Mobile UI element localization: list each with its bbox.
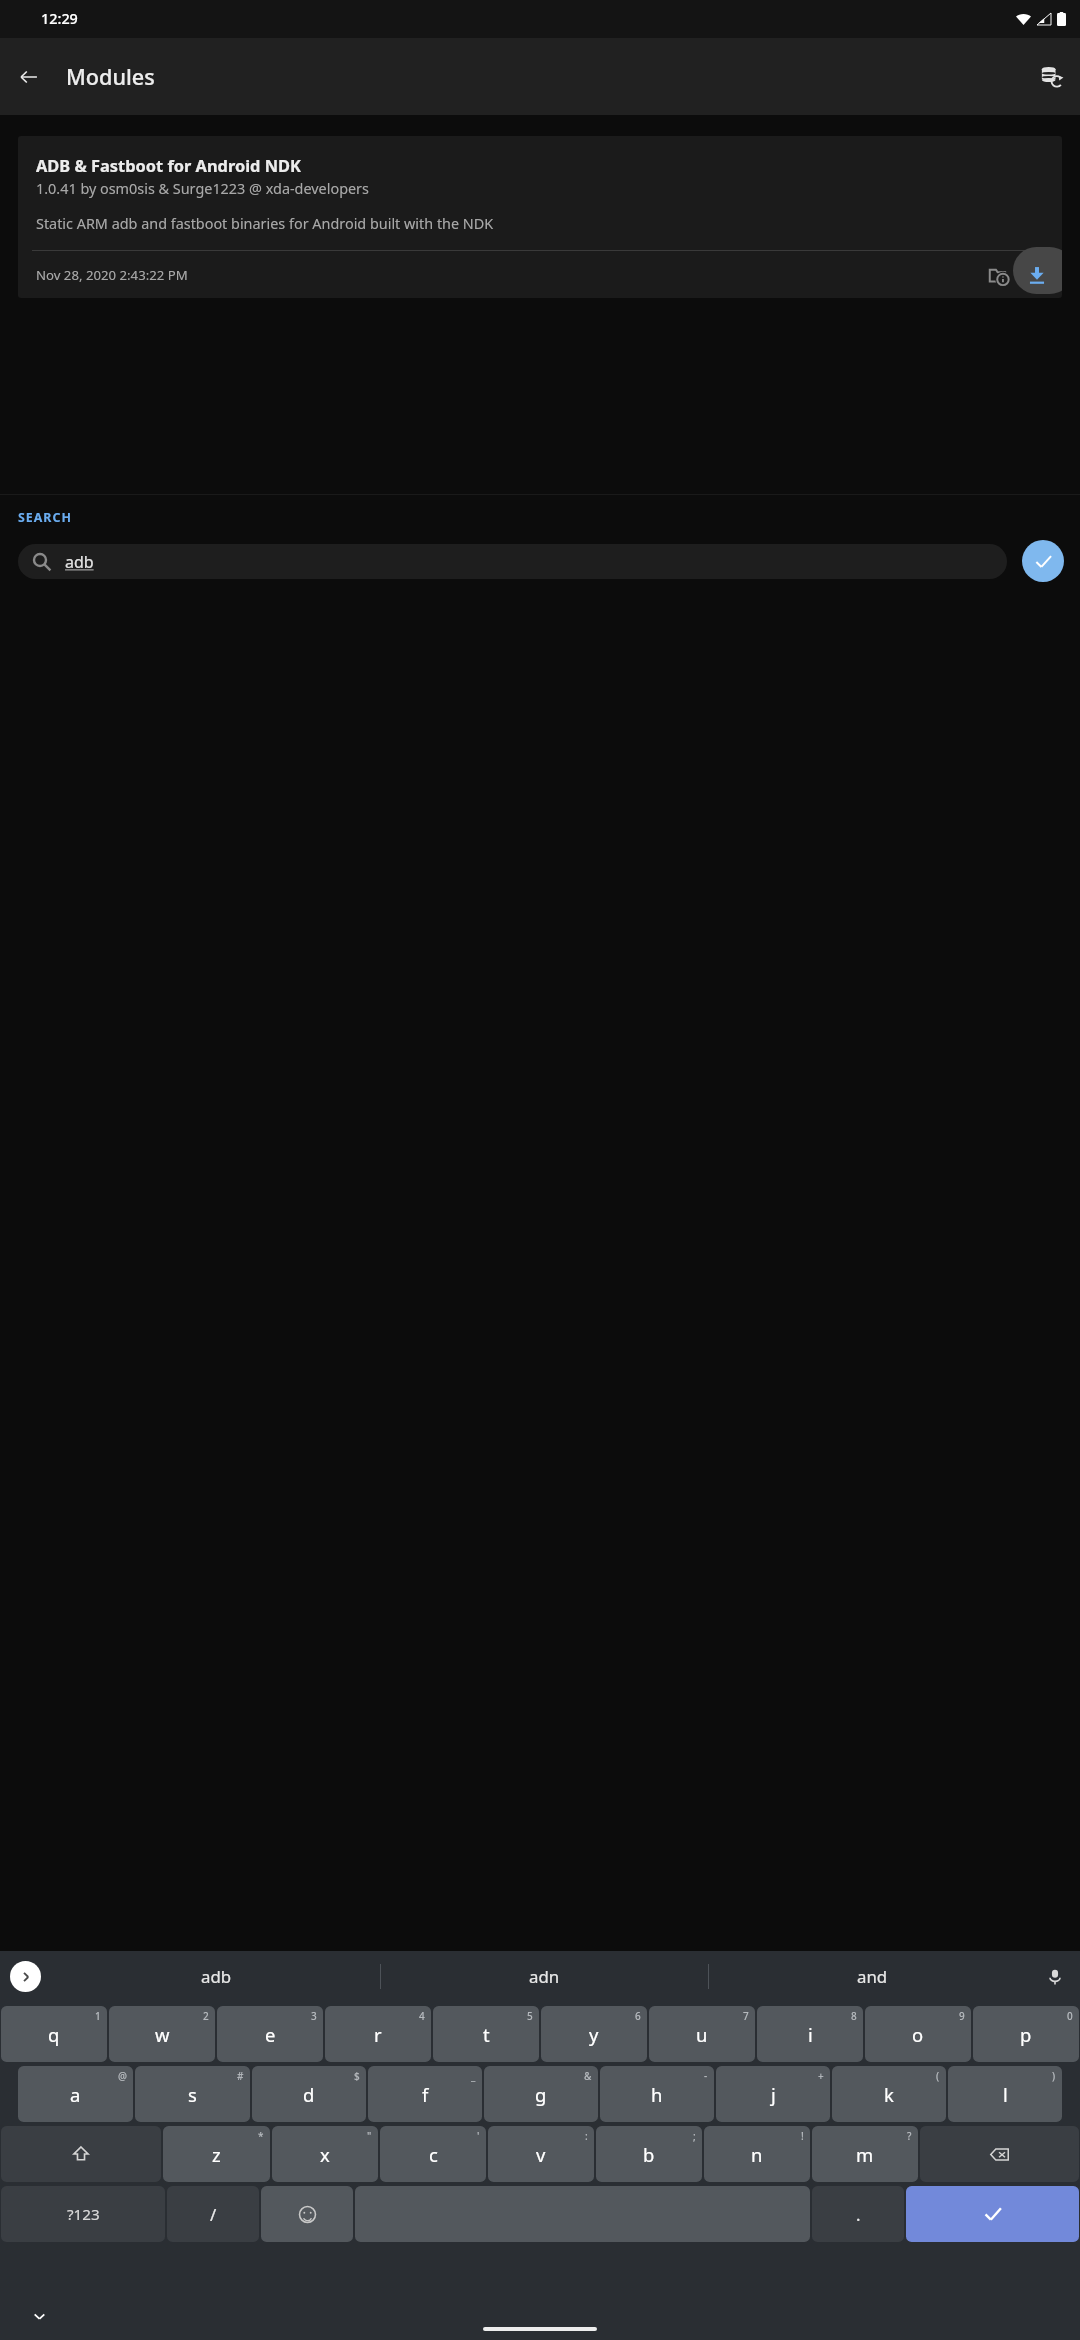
button[interactable]: adb [52, 1951, 380, 2001]
button[interactable]: b [596, 2126, 702, 2182]
staticText: $ [354, 2069, 360, 2083]
staticText: h [651, 2082, 663, 2107]
staticText: b [643, 2142, 655, 2167]
staticText: o [912, 2022, 924, 2047]
staticText: u [696, 2022, 708, 2047]
button[interactable]: adn [381, 1951, 708, 2001]
staticText: / [210, 2203, 217, 2226]
button[interactable]: / [167, 2186, 259, 2242]
staticText: 5 [527, 2009, 533, 2023]
staticText: r [374, 2022, 382, 2047]
staticText: _ [471, 2069, 476, 2083]
staticText: and [857, 1965, 888, 1988]
staticText: 6 [635, 2009, 641, 2023]
staticText: Static ARM adb and fastboot binaries for… [36, 214, 494, 234]
staticText: 12:29 [41, 9, 78, 29]
button[interactable]: i [757, 2006, 863, 2062]
button[interactable]: Voice input [1039, 1961, 1070, 1992]
staticText: 9 [959, 2009, 965, 2023]
staticText: ; [693, 2129, 696, 2143]
staticText: 7 [743, 2009, 749, 2023]
button[interactable]: g [484, 2066, 598, 2122]
button[interactable]: z [163, 2126, 270, 2182]
button[interactable]: p [973, 2006, 1079, 2062]
staticText: ) [1052, 2069, 1056, 2083]
button[interactable]: l [948, 2066, 1062, 2122]
staticText: c [429, 2142, 438, 2167]
button[interactable]: adb [18, 544, 1007, 579]
staticText: f [422, 2082, 429, 2107]
staticText: : [585, 2129, 588, 2143]
button[interactable]: j [716, 2066, 830, 2122]
button[interactable]: k [832, 2066, 946, 2122]
button[interactable]: o [865, 2006, 971, 2062]
button[interactable]: and [709, 1951, 1036, 2001]
staticText: 3 [311, 2009, 317, 2023]
button[interactable]: h [600, 2066, 714, 2122]
staticText: z [212, 2142, 221, 2167]
button[interactable]: Shift [1, 2126, 161, 2182]
staticText: y [589, 2022, 599, 2047]
button[interactable]: . [812, 2186, 904, 2242]
staticText: 0 [1067, 2009, 1073, 2023]
button[interactable]: Sync repositories [1032, 57, 1072, 97]
staticText: ' [477, 2129, 480, 2143]
button[interactable]: More suggestions [10, 1961, 41, 1992]
button[interactable]: e [217, 2006, 323, 2062]
staticText: * [258, 2129, 264, 2143]
staticText: k [884, 2082, 894, 2107]
button[interactable]: t [433, 2006, 539, 2062]
button[interactable]: Confirm search [1022, 540, 1064, 582]
staticText: 2 [203, 2009, 209, 2023]
staticText: e [265, 2022, 276, 2047]
button[interactable]: f [368, 2066, 482, 2122]
staticText: a [70, 2082, 81, 2107]
button[interactable]: s [135, 2066, 250, 2122]
button[interactable]: v [488, 2126, 594, 2182]
button[interactable]: n [704, 2126, 810, 2182]
button[interactable]: Download [1018, 256, 1056, 294]
button[interactable]: Emoji [261, 2186, 353, 2242]
button[interactable]: u [649, 2006, 755, 2062]
staticText: q [48, 2022, 60, 2047]
staticText: 1 [95, 2009, 101, 2023]
button[interactable]: r [325, 2006, 431, 2062]
staticText: . [856, 2203, 861, 2226]
button[interactable]: m [812, 2126, 918, 2182]
button[interactable]: c [380, 2126, 486, 2182]
staticText: # [237, 2069, 244, 2083]
button[interactable]: Module info [980, 256, 1018, 294]
staticText: v [536, 2142, 546, 2167]
button[interactable]: y [541, 2006, 647, 2062]
staticText: s [188, 2082, 197, 2107]
staticText: l [1003, 2082, 1008, 2107]
staticText: & [584, 2069, 592, 2083]
staticText: adb [65, 551, 94, 573]
staticText: ?123 [67, 2204, 100, 2225]
staticText: ADB & Fastboot for Android NDK [36, 154, 301, 176]
button[interactable]: Hide keyboard [24, 2301, 54, 2331]
staticText: ? [907, 2129, 912, 2143]
button[interactable]: a [18, 2066, 133, 2122]
staticText: " [367, 2129, 372, 2143]
button[interactable]: x [272, 2126, 378, 2182]
staticText: i [808, 2022, 813, 2047]
button[interactable]: ADB & Fastboot for Android NDK [18, 136, 1062, 298]
button[interactable]: Enter [906, 2186, 1079, 2242]
staticText: adn [529, 1965, 560, 1988]
button[interactable]: Back [10, 58, 48, 96]
staticText: j [771, 2082, 776, 2107]
button[interactable]: Backspace [920, 2126, 1079, 2182]
staticText: ! [801, 2129, 804, 2143]
staticText: m [856, 2142, 874, 2167]
button[interactable]: q [1, 2006, 107, 2062]
staticText: adb [201, 1965, 232, 1988]
button[interactable]: d [252, 2066, 366, 2122]
button[interactable]: ?123 [1, 2186, 165, 2242]
button[interactable]: w [109, 2006, 215, 2062]
staticText: 4 [419, 2009, 425, 2023]
staticText: ( [936, 2069, 940, 2083]
staticText: w [155, 2022, 170, 2047]
staticText: - [704, 2069, 708, 2083]
